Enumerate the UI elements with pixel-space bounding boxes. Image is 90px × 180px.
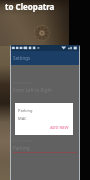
staticText: From Left to Right xyxy=(13,87,52,93)
button[interactable]: MAC xyxy=(18,116,27,121)
staticText: Parking xyxy=(13,145,30,151)
button[interactable]: ADD NEW xyxy=(50,125,69,130)
staticText: to Cleopatra xyxy=(5,1,55,12)
button[interactable]: Settings xyxy=(11,51,79,65)
staticText: Settings xyxy=(13,55,31,61)
button[interactable]: Parking xyxy=(18,108,33,113)
staticText: ADD NEW xyxy=(50,125,69,130)
